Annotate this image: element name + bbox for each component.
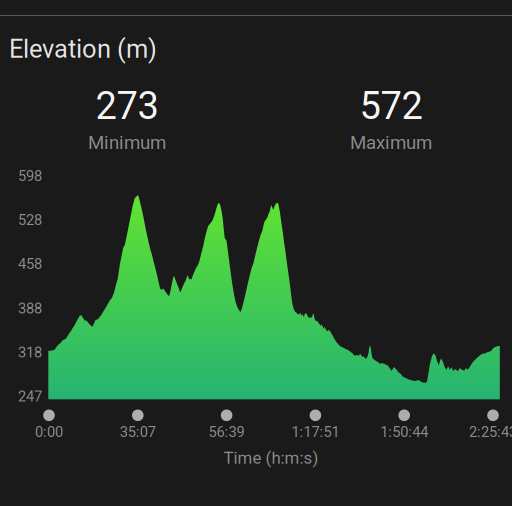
staticText: Time (h:m:s) (223, 448, 318, 468)
staticText: Maximum (350, 132, 432, 153)
staticText: 1:50:44 (380, 423, 428, 441)
staticText: 2:25:43 (469, 423, 512, 441)
staticText: 598 (18, 167, 42, 185)
staticText: 388 (18, 300, 42, 317)
staticText: 273 (95, 84, 158, 128)
staticText: 318 (18, 344, 42, 361)
staticText: 247 (18, 388, 42, 405)
staticText: 572 (359, 84, 422, 128)
staticText: 528 (18, 211, 42, 229)
staticText: Elevation (m) (9, 34, 157, 64)
staticText: 35:07 (120, 423, 156, 441)
staticText: 56:39 (209, 423, 245, 441)
staticText: 1:17:51 (291, 423, 339, 441)
staticText: 458 (18, 255, 42, 273)
staticText: 0:00 (35, 423, 63, 441)
staticText: Minimum (88, 132, 166, 153)
